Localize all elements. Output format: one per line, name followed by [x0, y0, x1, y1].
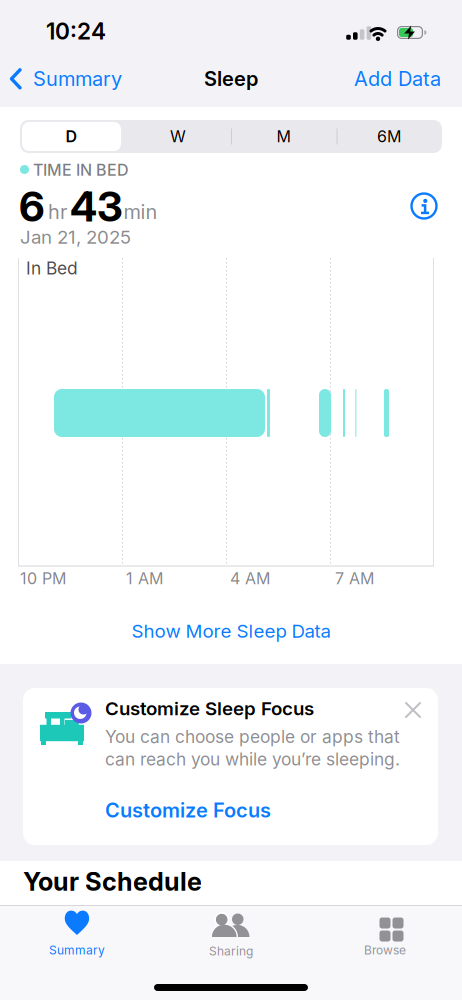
- button[interactable]: W: [125, 120, 230, 153]
- staticText: Customize Focus: [105, 798, 271, 822]
- staticText: Browse: [364, 943, 406, 957]
- staticText: 7 AM: [335, 569, 374, 588]
- staticText: can reach you while you’re sleeping.: [105, 749, 400, 769]
- staticText: Jan 21, 2025: [20, 226, 131, 248]
- staticText: 10:24: [46, 18, 106, 45]
- staticText: Your Schedule: [23, 866, 202, 896]
- staticText: In Bed: [26, 258, 78, 278]
- staticText: Sleep: [204, 67, 258, 91]
- staticText: Customize Sleep Focus: [105, 697, 314, 719]
- button[interactable]: Summary: [0, 910, 154, 957]
- staticText: Summary: [49, 943, 105, 957]
- staticText: hr: [48, 200, 67, 224]
- button[interactable]: Add Data: [354, 67, 441, 91]
- button[interactable]: 6M: [336, 120, 441, 153]
- staticText: You can choose people or apps that: [105, 726, 400, 747]
- button[interactable]: Customize Focus: [105, 798, 271, 822]
- button[interactable]: M: [231, 120, 336, 153]
- staticText: 6M: [377, 127, 401, 146]
- button[interactable]: Show More Sleep Data: [0, 620, 462, 642]
- staticText: Show More Sleep Data: [131, 620, 330, 642]
- staticText: Add Data: [354, 67, 441, 91]
- staticText: 1 AM: [126, 569, 163, 588]
- staticText: 43: [70, 182, 123, 231]
- staticText: 10 PM: [20, 569, 66, 588]
- button[interactable]: About Time in Bed: [410, 192, 438, 220]
- button[interactable]: Browse: [308, 910, 462, 957]
- staticText: D: [65, 127, 77, 146]
- staticText: Summary: [33, 67, 122, 91]
- staticText: TIME IN BED: [33, 160, 129, 179]
- staticText: 6: [19, 182, 45, 231]
- staticText: Sharing: [209, 944, 253, 958]
- staticText: M: [276, 127, 290, 146]
- button[interactable]: Dismiss: [397, 694, 428, 725]
- staticText: min: [123, 200, 157, 224]
- button[interactable]: D: [22, 122, 121, 151]
- button[interactable]: Summary: [10, 67, 122, 91]
- staticText: 4 AM: [230, 569, 270, 588]
- button[interactable]: Sharing: [154, 910, 308, 958]
- staticText: W: [170, 127, 186, 146]
